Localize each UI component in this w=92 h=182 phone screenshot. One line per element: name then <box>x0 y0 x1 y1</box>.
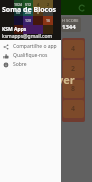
staticText: 4 <box>37 2 40 7</box>
staticText: 16 <box>46 18 51 23</box>
staticText: 8 <box>37 10 40 15</box>
button[interactable]: Qualifique-nos <box>0 51 61 60</box>
staticText: 128 <box>25 18 32 23</box>
staticText: Compartilhe o app <box>13 43 57 50</box>
button[interactable]: Compartilhe o app <box>0 42 61 51</box>
staticText: ksmapps@gmail.com <box>2 33 53 40</box>
staticText: 2 <box>47 2 50 7</box>
button[interactable]: Sobre <box>0 60 61 69</box>
staticText: 1344 <box>62 23 76 31</box>
staticText: Soma de Blocos <box>2 5 57 15</box>
staticText: 8 <box>71 84 76 94</box>
staticText: Sobre <box>13 61 27 68</box>
staticText: H SCORE <box>62 18 79 23</box>
staticText: 64 <box>16 10 21 15</box>
staticText: KSM Apps <box>2 26 27 33</box>
button[interactable]: Restart game <box>78 4 86 12</box>
staticText: 1024 <box>14 2 23 7</box>
staticText: ver <box>57 72 75 87</box>
staticText: 512 <box>25 2 32 7</box>
staticText: 4 <box>71 104 76 114</box>
staticText: 2 <box>71 64 76 74</box>
staticText: 256 <box>25 10 32 15</box>
staticText: Qualifique-nos <box>13 52 48 59</box>
staticText: 4 <box>71 44 76 54</box>
